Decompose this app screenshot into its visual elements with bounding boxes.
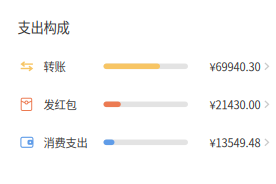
button[interactable]: 转账: [0, 47, 276, 85]
staticText: 发红包: [43, 96, 76, 112]
staticText: ¥21430.00: [209, 96, 260, 112]
button[interactable]: 发红包: [0, 85, 276, 123]
staticText: ¥13549.48: [209, 134, 260, 150]
staticText: 转账: [43, 58, 65, 74]
staticText: 支出构成: [17, 17, 69, 36]
button[interactable]: 消费支出: [0, 123, 276, 161]
staticText: ¥69940.30: [209, 58, 260, 74]
staticText: 消费支出: [43, 134, 87, 150]
